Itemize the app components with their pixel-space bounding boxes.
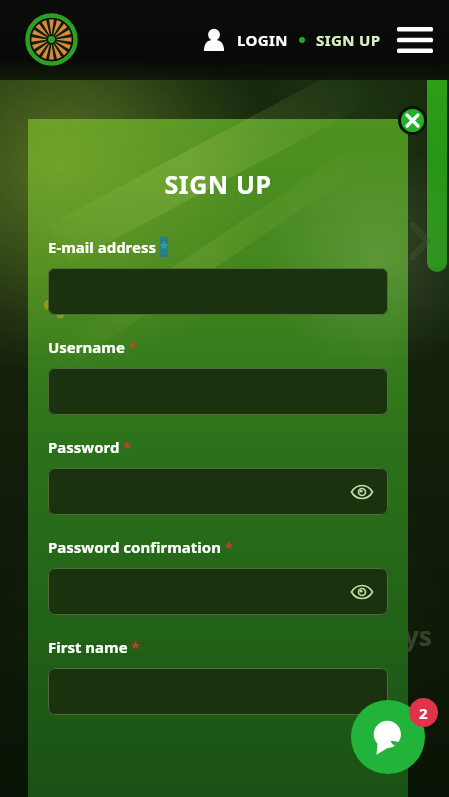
staticText: 2: [419, 703, 428, 723]
staticText: LOGIN: [237, 30, 288, 50]
button[interactable]: [48, 368, 388, 415]
button[interactable]: Show password: [348, 578, 376, 606]
button[interactable]: Open chat: [351, 700, 425, 774]
staticText: Password *: [48, 437, 132, 457]
staticText: SIGN UP: [316, 30, 381, 50]
staticText: Username *: [48, 337, 137, 357]
button[interactable]: Show password: [48, 468, 388, 515]
staticText: E-mail address *: [48, 237, 169, 257]
staticText: Password confirmation *: [48, 537, 233, 557]
staticText: SIGN UP: [28, 167, 408, 201]
button[interactable]: Close: [401, 109, 424, 132]
button[interactable]: Show password: [348, 478, 376, 506]
button[interactable]: Account: [199, 25, 229, 55]
button[interactable]: Next slide: [427, 80, 447, 272]
staticText: ys: [404, 618, 432, 653]
staticText: First name *: [48, 637, 140, 657]
button[interactable]: 2 unread messages: [409, 698, 438, 727]
button[interactable]: [48, 268, 388, 315]
button[interactable]: LOGIN: [235, 24, 290, 56]
button[interactable]: [48, 668, 388, 715]
button[interactable]: Show password: [48, 568, 388, 615]
button[interactable]: SIGN UP: [314, 24, 383, 56]
button[interactable]: Home: [25, 13, 78, 66]
button[interactable]: Menu: [393, 18, 437, 62]
